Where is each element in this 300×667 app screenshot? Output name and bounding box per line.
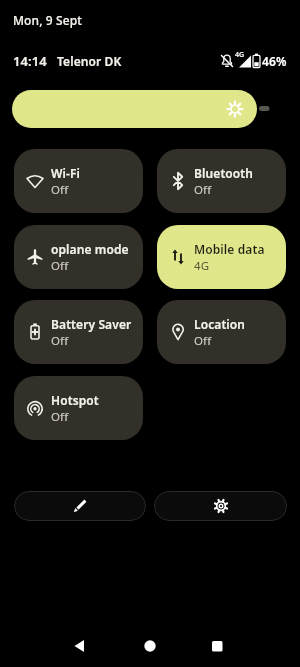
staticText: Off: [194, 333, 212, 349]
button[interactable]: [14, 491, 146, 521]
staticText: 4G: [235, 50, 245, 60]
button[interactable]: Battery Saver: [14, 300, 143, 364]
button[interactable]: Location: [157, 300, 286, 364]
staticText: Telenor DK: [57, 53, 122, 69]
staticText: 4G: [194, 258, 210, 274]
button[interactable]: [201, 630, 233, 662]
staticText: Battery Saver: [51, 316, 132, 332]
button[interactable]: [63, 630, 95, 662]
staticText: Off: [51, 258, 69, 274]
staticText: 14:14: [13, 52, 47, 70]
button[interactable]: [154, 491, 287, 521]
staticText: Wi-Fi: [51, 165, 81, 181]
staticText: Off: [51, 409, 69, 425]
staticText: Off: [194, 182, 212, 198]
button[interactable]: [12, 90, 257, 128]
staticText: Mon, 9 Sept: [13, 12, 82, 28]
staticText: Bluetooth: [194, 165, 254, 181]
staticText: 46%: [262, 53, 287, 69]
button[interactable]: Wi-Fi: [14, 149, 143, 213]
staticText: oplane mode: [51, 241, 129, 257]
button[interactable]: Mobile data: [157, 225, 286, 289]
button[interactable]: Hotspot: [14, 376, 143, 440]
button[interactable]: [134, 630, 166, 662]
staticText: Hotspot: [51, 392, 99, 408]
button[interactable]: oplane mode: [14, 225, 143, 289]
staticText: Off: [51, 182, 69, 198]
staticText: Mobile data: [194, 241, 265, 257]
button[interactable]: Bluetooth: [157, 149, 286, 213]
staticText: Location: [194, 316, 246, 332]
staticText: Off: [51, 333, 69, 349]
